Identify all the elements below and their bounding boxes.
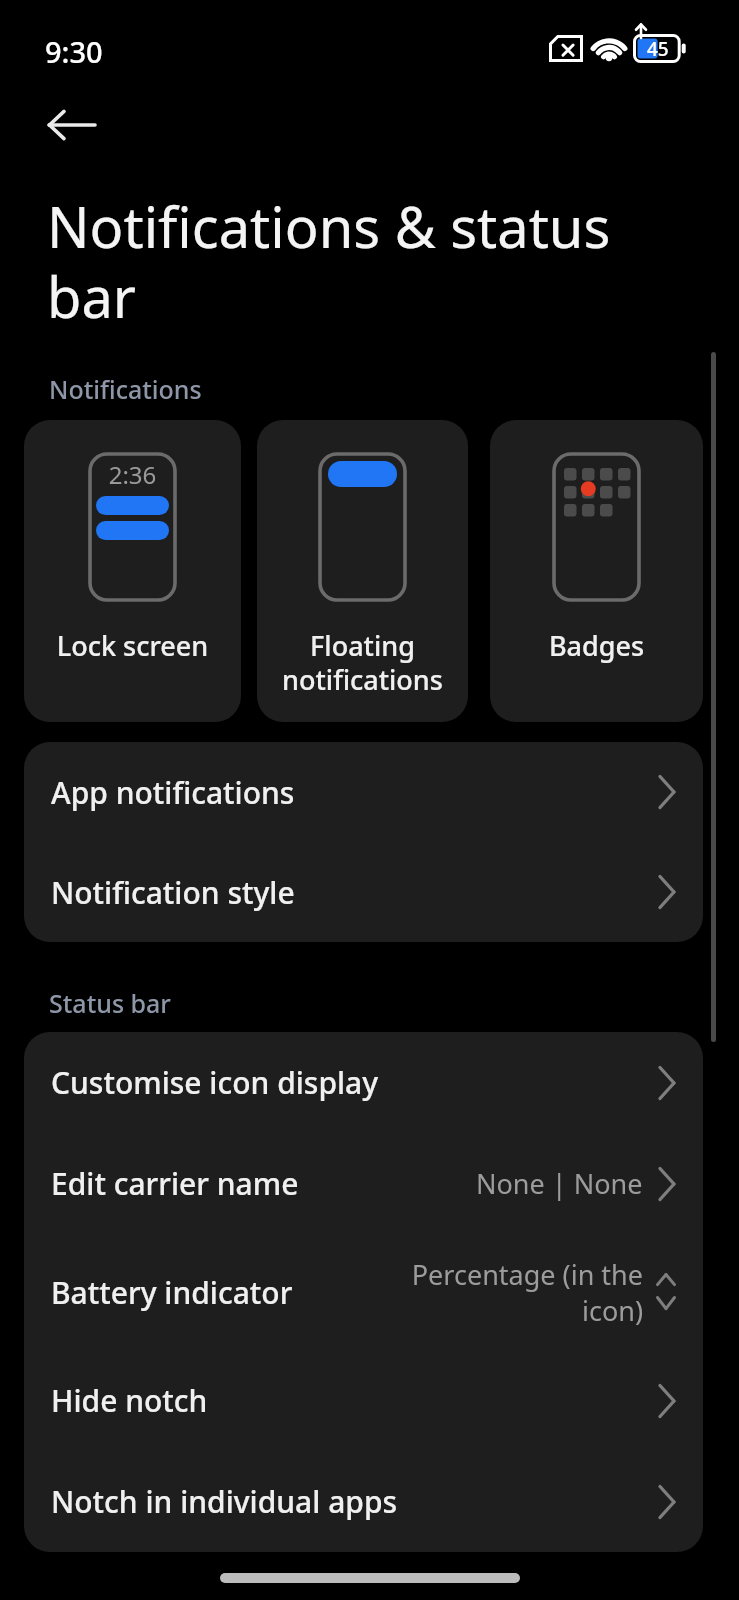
staticText: Status bar bbox=[49, 986, 171, 1020]
button[interactable]: Notification style bbox=[24, 842, 703, 942]
staticText: Battery indicator bbox=[51, 1272, 293, 1313]
button[interactable]: 2:36 bbox=[24, 420, 241, 722]
staticText: 45 bbox=[647, 36, 669, 62]
staticText: 2:36 bbox=[88, 458, 177, 491]
button[interactable]: Floating notifications bbox=[257, 420, 468, 722]
button[interactable]: Hide notch bbox=[24, 1350, 703, 1451]
staticText: 9:30 bbox=[45, 32, 103, 71]
staticText: Customise icon display bbox=[51, 1062, 379, 1103]
staticText: Floating notifications bbox=[257, 627, 468, 698]
button[interactable]: App notifications bbox=[24, 742, 703, 842]
button[interactable]: Back bbox=[22, 94, 122, 156]
staticText: None | None bbox=[476, 1165, 643, 1202]
staticText: Edit carrier name bbox=[51, 1163, 299, 1204]
staticText: Percentage (in the icon) bbox=[411, 1256, 643, 1329]
staticText: Hide notch bbox=[51, 1380, 208, 1421]
staticText: Badges bbox=[490, 627, 703, 664]
staticText: Notifications & status bar bbox=[47, 188, 627, 334]
button[interactable]: Edit carrier name bbox=[24, 1133, 703, 1234]
staticText: Lock screen bbox=[24, 627, 241, 664]
staticText: Notification style bbox=[51, 872, 295, 913]
button[interactable]: Battery indicator bbox=[24, 1234, 703, 1350]
button[interactable]: Customise icon display bbox=[24, 1032, 703, 1133]
staticText: App notifications bbox=[51, 772, 295, 813]
staticText: Notifications bbox=[49, 372, 202, 406]
button[interactable]: Notch in individual apps bbox=[24, 1451, 703, 1552]
button[interactable]: Badges bbox=[490, 420, 703, 722]
staticText: Notch in individual apps bbox=[51, 1481, 398, 1522]
